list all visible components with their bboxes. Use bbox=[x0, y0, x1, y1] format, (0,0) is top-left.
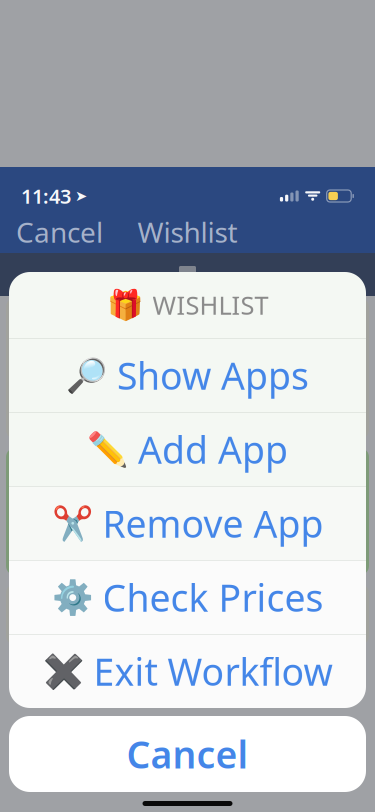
button[interactable]: ⚙️ bbox=[9, 560, 366, 634]
staticText: Show Apps bbox=[117, 350, 309, 400]
staticText: Comment bbox=[69, 310, 199, 347]
staticText: Choose from Menu bbox=[69, 441, 238, 516]
button[interactable]: ✏️ bbox=[9, 412, 366, 486]
staticText: wishlistname bbox=[257, 506, 336, 566]
staticText: Wishlist bbox=[137, 213, 237, 251]
staticText: ✏️ bbox=[87, 430, 129, 468]
staticText: Show the menu bbox=[23, 367, 218, 402]
staticText: Check Prices bbox=[102, 572, 323, 622]
staticText: ▤ bbox=[24, 313, 49, 344]
staticText: WISHLIST bbox=[152, 288, 268, 322]
staticText: Add App bbox=[138, 424, 288, 474]
button[interactable]: Cancel bbox=[0, 211, 119, 253]
button[interactable]: Cancel bbox=[9, 716, 366, 792]
button[interactable]: ✖️ bbox=[9, 634, 366, 708]
staticText: Prompt bbox=[24, 518, 121, 554]
staticText: ⚙️ bbox=[51, 578, 93, 616]
staticText: Get Variable bbox=[69, 596, 229, 633]
staticText: 🎁 bbox=[106, 288, 143, 322]
staticText: ✷ bbox=[23, 460, 50, 497]
staticText: Cancel bbox=[126, 729, 248, 779]
staticText: Exit Workflow bbox=[93, 646, 332, 696]
staticText: Cancel bbox=[16, 213, 103, 251]
staticText: settings bbox=[154, 506, 235, 566]
staticText: ✖️ bbox=[42, 652, 84, 690]
staticText: ✂️ bbox=[51, 504, 93, 542]
staticText: 🔎 bbox=[66, 356, 108, 394]
button[interactable]: ✂️ bbox=[9, 486, 366, 560]
staticText: ➤ bbox=[75, 188, 87, 204]
button[interactable]: 🔎 bbox=[9, 338, 366, 412]
staticText: Remove App bbox=[102, 498, 323, 548]
staticText: 11:43 bbox=[21, 183, 71, 209]
